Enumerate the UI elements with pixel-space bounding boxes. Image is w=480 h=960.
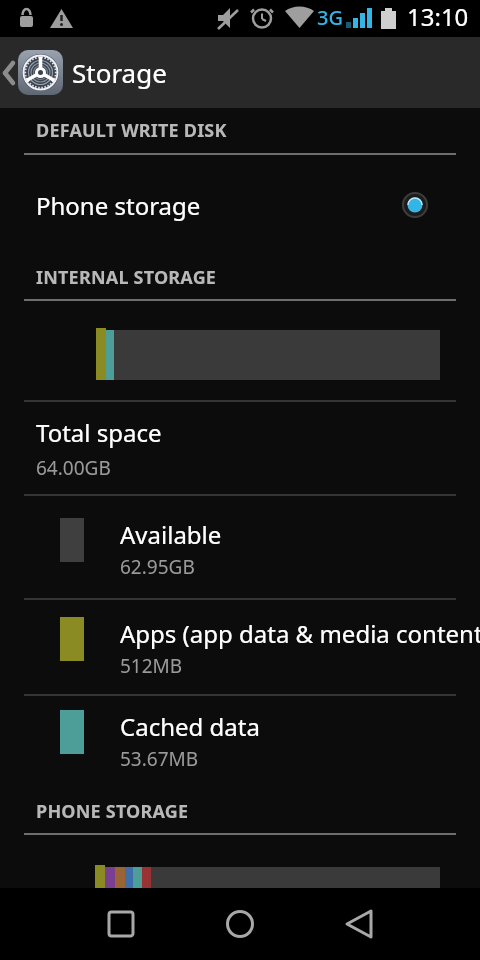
staticText: Available bbox=[120, 518, 222, 551]
staticText: 3G bbox=[317, 4, 343, 31]
staticText: INTERNAL STORAGE bbox=[36, 265, 217, 290]
button[interactable] bbox=[0, 888, 160, 960]
staticText: 13:10 bbox=[407, 0, 469, 33]
button[interactable] bbox=[402, 192, 428, 218]
button[interactable]: Storage bbox=[0, 37, 480, 108]
button[interactable]: Cached data bbox=[0, 696, 480, 790]
staticText: DEFAULT WRITE DISK bbox=[36, 118, 227, 143]
staticText: Storage bbox=[72, 55, 167, 90]
staticText: Phone storage bbox=[36, 189, 402, 222]
staticText: 62.95GB bbox=[120, 554, 195, 580]
button[interactable] bbox=[160, 888, 320, 960]
button[interactable]: Phone storage bbox=[0, 155, 480, 255]
staticText: Cached data bbox=[120, 710, 260, 743]
staticText: Apps (app data & media content) bbox=[120, 617, 480, 650]
button[interactable]: Available bbox=[0, 496, 480, 598]
staticText: 53.67MB bbox=[120, 746, 199, 772]
button[interactable] bbox=[320, 888, 480, 960]
button[interactable]: Total space bbox=[0, 402, 480, 494]
staticText: Total space bbox=[36, 416, 162, 449]
staticText: PHONE STORAGE bbox=[36, 799, 189, 824]
staticText: 64.00GB bbox=[36, 455, 111, 481]
button[interactable]: Apps (app data & media content) bbox=[0, 600, 480, 694]
staticText: 512MB bbox=[120, 653, 183, 679]
